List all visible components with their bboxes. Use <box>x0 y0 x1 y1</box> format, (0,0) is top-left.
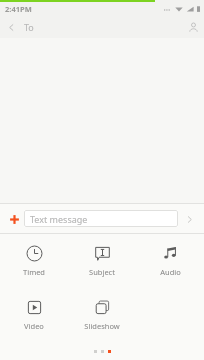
staticText: Timed <box>23 267 45 277</box>
staticText: Slideshow <box>84 321 120 331</box>
button[interactable]: Timed <box>0 234 68 288</box>
staticText: Text message <box>30 213 88 225</box>
button[interactable]: Video <box>0 288 68 342</box>
button[interactable]: Add attachment <box>4 209 24 229</box>
button[interactable]: Add contact <box>182 16 204 38</box>
staticText: Audio <box>160 267 181 277</box>
staticText: Subject <box>89 267 115 277</box>
staticText: To <box>24 21 34 33</box>
button[interactable]: Subject <box>68 234 136 288</box>
button[interactable]: Text message <box>24 210 178 227</box>
button[interactable]: Audio <box>136 234 204 288</box>
button[interactable]: Slideshow <box>68 288 136 342</box>
button[interactable]: Back <box>0 16 22 38</box>
staticText: Video <box>24 321 44 331</box>
button[interactable]: Send <box>178 208 200 230</box>
staticText: 2:41PM <box>5 4 32 14</box>
